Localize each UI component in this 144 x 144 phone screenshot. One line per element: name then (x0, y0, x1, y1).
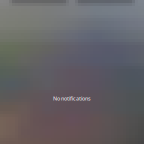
staticText: No notifications (53, 95, 91, 102)
